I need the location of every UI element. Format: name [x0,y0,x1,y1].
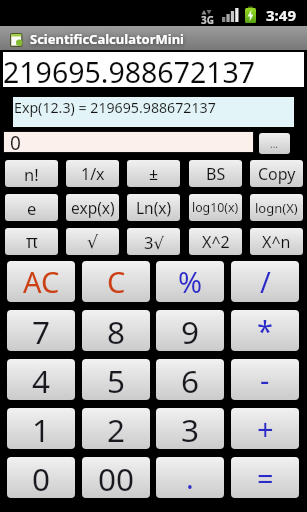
staticText: 3G [201,13,214,27]
button[interactable]: √ [66,228,119,255]
staticText: = [257,458,274,497]
staticText: 0 [10,130,21,152]
staticText: ... [270,137,279,151]
staticText: . [186,458,194,497]
button[interactable]: . [156,457,224,498]
staticText: n! [24,163,39,185]
staticText: AC [23,262,60,301]
staticText: 9 [181,310,200,351]
button[interactable]: e [5,194,58,221]
staticText: 1 [32,408,51,449]
staticText: * [257,311,273,350]
button[interactable]: π [5,228,58,255]
staticText: 8 [107,310,126,351]
button[interactable]: Ln(x) [127,194,180,221]
button[interactable]: 1/x [66,160,119,187]
staticText: + [257,409,274,448]
button[interactable]: ... [259,133,290,154]
staticText: - [260,360,270,399]
button[interactable]: / [231,261,299,302]
button[interactable]: = [231,457,299,498]
staticText: 3√ [144,231,164,253]
button[interactable]: 5 [82,359,150,400]
staticText: √ [87,232,99,252]
staticText: Ln(x) [136,197,172,218]
button[interactable]: * [231,310,299,351]
button[interactable]: 3 [156,408,224,449]
button[interactable]: X^n [250,228,303,255]
button[interactable]: 4 [7,359,75,400]
staticText: 0 [32,457,51,498]
staticText: Exp(12.3) = 219695.988672137 [14,98,216,117]
button[interactable]: ± [127,160,180,187]
staticText: 1/x [81,163,105,185]
staticText: 00 [98,457,135,498]
button[interactable]: AC [7,261,75,302]
staticText: 3:49 [266,5,296,25]
staticText: 2 [107,408,126,449]
staticText: / [260,262,271,301]
button[interactable]: X^2 [189,228,242,255]
staticText: 4 [32,359,51,400]
staticText: C [107,262,126,301]
staticText: 7 [32,310,51,351]
button[interactable]: + [231,408,299,449]
button[interactable]: logn(X) [250,194,303,221]
staticText: 5 [107,359,126,400]
button[interactable]: 0 [7,457,75,498]
button[interactable]: 6 [156,359,224,400]
button[interactable]: - [231,359,299,400]
button[interactable]: 00 [82,457,150,498]
staticText: BS [206,163,226,185]
staticText: π [26,229,38,254]
button[interactable]: 9 [156,310,224,351]
button[interactable]: exp(x) [66,194,119,221]
staticText: X^n [262,231,291,253]
button[interactable]: 2 [82,408,150,449]
staticText: 219695.988672137 [3,53,256,92]
staticText: 6 [181,359,200,400]
staticText: X^2 [202,231,230,253]
staticText: log10(x) [192,199,239,216]
button[interactable]: Copy [250,160,303,187]
button[interactable]: Exp(12.3) = 219695.988672137 [13,97,294,127]
staticText: Copy [258,163,296,185]
button[interactable]: 7 [7,310,75,351]
button[interactable]: BS [189,160,242,187]
staticText: 3 [181,408,200,449]
staticText: ScientificCalculatorMini [30,30,184,48]
staticText: e [27,197,37,219]
button[interactable]: 219695.988672137 [1,50,306,89]
button[interactable]: log10(x) [189,194,242,221]
button[interactable]: 1 [7,408,75,449]
staticText: ± [149,163,159,185]
button[interactable]: 8 [82,310,150,351]
staticText: % [178,262,203,301]
staticText: logn(X) [255,199,298,217]
button[interactable]: 0 [3,131,254,153]
button[interactable]: % [156,261,224,302]
button[interactable]: C [82,261,150,302]
button[interactable]: n! [5,160,58,187]
button[interactable]: 3√ [127,228,180,255]
staticText: exp(x) [71,197,115,218]
